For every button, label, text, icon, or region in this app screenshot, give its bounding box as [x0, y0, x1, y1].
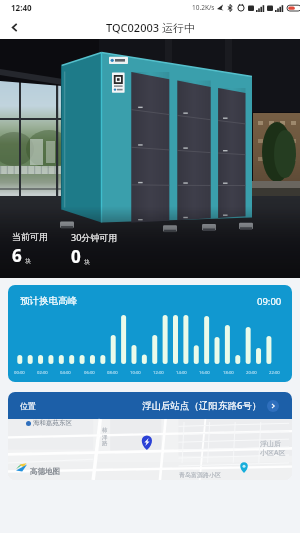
staticText: 当前可用 — [12, 231, 48, 242]
staticText: 高德地图 — [30, 467, 60, 476]
button[interactable]: Back — [0, 15, 28, 39]
staticText: 10.2K/s — [192, 3, 215, 12]
staticText: 30分钟可用 — [71, 231, 118, 243]
staticText: 08:00 — [107, 370, 118, 376]
staticText: 0 — [71, 245, 81, 268]
staticText: 浮山后站点（辽阳东路6号） — [142, 399, 262, 412]
staticText: 6 — [12, 244, 22, 267]
staticText: 06:00 — [84, 370, 95, 376]
staticText: 块 — [84, 258, 90, 266]
staticText: 位置 — [20, 401, 36, 411]
staticText: 22:00 — [269, 370, 280, 376]
staticText: 柿 泽 路 — [102, 427, 108, 446]
staticText: 16:00 — [199, 370, 210, 376]
staticText: 09:00 — [257, 295, 282, 308]
staticText: 20:00 — [246, 370, 257, 376]
staticText: 12:00 — [153, 370, 164, 376]
staticText: 10:00 — [130, 370, 141, 376]
staticText: 18:00 — [223, 370, 234, 376]
staticText: 浮山后 小区A区 — [260, 439, 286, 457]
button[interactable]: 位置 — [8, 392, 292, 419]
staticText: 00:00 — [14, 370, 25, 376]
staticText: 预计换电高峰 — [20, 295, 77, 307]
staticText: TQC02003 运行中 — [106, 20, 195, 35]
button[interactable]: 预计换电高峰 — [8, 285, 292, 382]
staticText: 04:00 — [60, 370, 71, 376]
staticText: 02:00 — [37, 370, 48, 376]
staticText: 12:40 — [11, 2, 32, 13]
staticText: 青岛富源路小区 — [179, 471, 221, 479]
staticText: 块 — [25, 257, 31, 265]
staticText: 海和嘉苑东区 — [33, 419, 72, 427]
button[interactable]: Open location — [267, 400, 279, 412]
staticText: 14:00 — [176, 370, 187, 376]
